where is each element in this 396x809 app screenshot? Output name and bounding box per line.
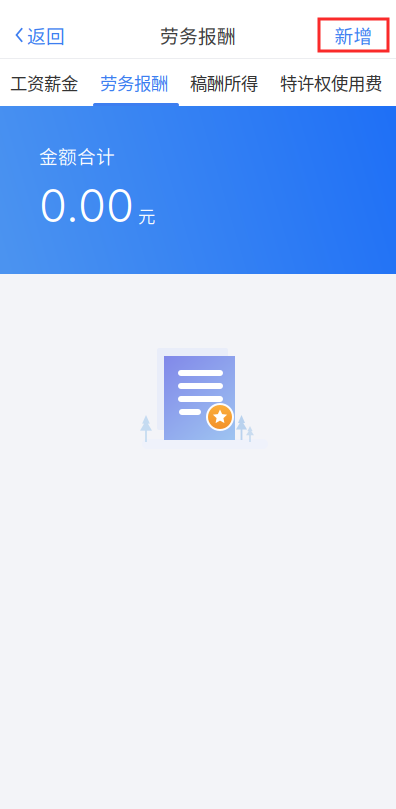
button[interactable]: 新增 bbox=[319, 7, 388, 51]
staticText: 金额合计 bbox=[39, 142, 115, 169]
staticText: 工资薪金 bbox=[10, 70, 78, 95]
staticText: 劳务报酬 bbox=[160, 21, 236, 48]
staticText: 特许权使用费 bbox=[280, 70, 382, 95]
button[interactable]: 特许权使用费 bbox=[280, 59, 382, 106]
staticText: 劳务报酬 bbox=[100, 70, 168, 95]
staticText: 稿酬所得 bbox=[190, 70, 258, 95]
staticText: 元 bbox=[138, 203, 155, 228]
button[interactable]: 返回 bbox=[0, 0, 77, 58]
button[interactable]: 工资薪金 bbox=[10, 59, 78, 106]
button[interactable]: 劳务报酬 bbox=[100, 59, 168, 106]
staticText: 返回 bbox=[27, 21, 65, 48]
staticText: 0.00 bbox=[39, 178, 134, 233]
staticText: 新增 bbox=[334, 21, 372, 48]
button[interactable]: 稿酬所得 bbox=[190, 59, 258, 106]
